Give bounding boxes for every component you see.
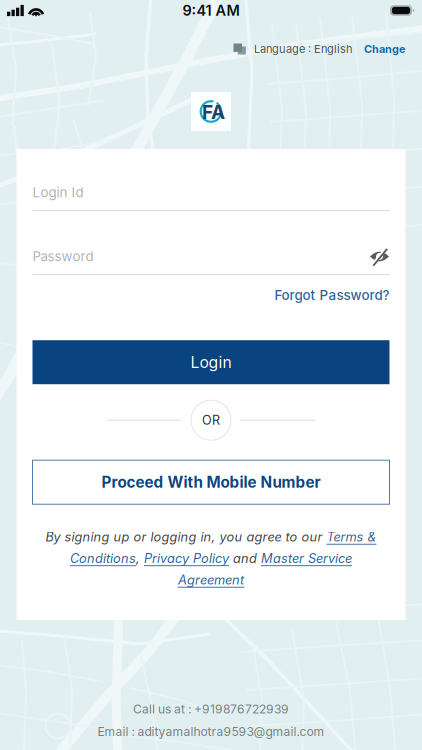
button[interactable]: Proceed With Mobile Number	[32, 460, 389, 504]
staticText: Password	[32, 248, 93, 264]
button[interactable]: Agreement	[178, 572, 244, 588]
button[interactable]: Show password	[369, 248, 389, 264]
staticText: Change	[364, 42, 405, 56]
staticText: OR	[202, 413, 220, 428]
staticText: Login Id	[32, 184, 83, 200]
button[interactable]: Forgot Password?	[274, 287, 389, 303]
staticText: FA	[202, 100, 225, 123]
staticText: Conditions, Privacy Policy and Master Se…	[70, 551, 352, 566]
staticText: Call us at : +919876722939	[133, 702, 289, 716]
staticText: Agreement	[178, 572, 244, 588]
staticText: Language : English	[254, 42, 353, 56]
staticText: Forgot Password?	[274, 287, 389, 303]
staticText: Proceed With Mobile Number	[101, 473, 320, 491]
staticText: Email : adityamalhotra9593@gmail.com	[97, 724, 324, 739]
button[interactable]: Login	[32, 340, 389, 384]
staticText: By signing up or logging in, you agree t…	[45, 529, 376, 545]
staticText: Login	[190, 353, 231, 372]
staticText: 9:41 AM	[182, 2, 239, 19]
button[interactable]: Change	[353, 42, 405, 56]
